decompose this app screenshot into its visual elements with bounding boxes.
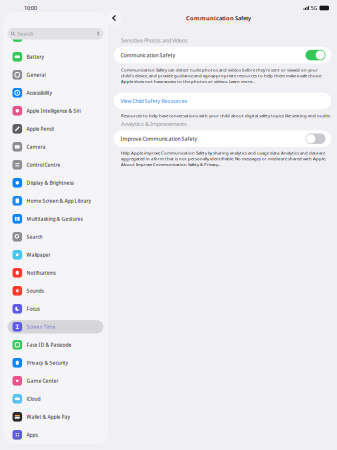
button[interactable]: Display & Brightness bbox=[7, 176, 103, 189]
button[interactable]: View Child Safety Resources bbox=[114, 93, 331, 109]
button[interactable]: Apple Intelligence & Siri bbox=[7, 104, 103, 117]
staticText: Notifications bbox=[27, 269, 56, 276]
staticText: Search bbox=[27, 233, 43, 240]
staticText: Communication Safety bbox=[120, 51, 175, 59]
button[interactable]: Privacy & Security bbox=[7, 356, 103, 369]
staticText: Face ID & Passcode bbox=[27, 341, 72, 348]
staticText: Apple Intelligence & Siri bbox=[27, 107, 81, 114]
button[interactable]: Battery bbox=[7, 50, 103, 63]
button[interactable]: Back bbox=[107, 11, 121, 25]
staticText: Improve Communication Safety bbox=[120, 135, 197, 142]
button[interactable]: Wallpaper bbox=[7, 248, 103, 261]
staticText: Game Center bbox=[27, 377, 59, 384]
button[interactable]: Apps bbox=[7, 428, 103, 441]
button[interactable]: Multitasking & Gestures bbox=[7, 212, 103, 225]
staticText: Sensitive Photos and Videos bbox=[121, 36, 188, 44]
button[interactable]: Home Screen & App Library bbox=[7, 194, 103, 207]
staticText: Screen Time bbox=[27, 323, 56, 330]
button[interactable]: Control Centre bbox=[7, 158, 103, 171]
staticText: View Child Safety Resources bbox=[120, 97, 187, 104]
staticText: General bbox=[27, 71, 46, 78]
staticText: Analytics & Improvements bbox=[121, 120, 187, 128]
staticText: Display & Brightness bbox=[27, 179, 74, 186]
button[interactable]: Game Center bbox=[7, 374, 103, 387]
staticText: Search bbox=[17, 30, 33, 37]
staticText: Camera bbox=[27, 143, 46, 150]
staticText: Communication Safety bbox=[186, 14, 251, 22]
button[interactable]: General bbox=[7, 68, 103, 81]
staticText: Apps bbox=[27, 431, 38, 438]
button[interactable]: Screen Time bbox=[7, 320, 103, 333]
button[interactable]: Face ID & Passcode bbox=[7, 338, 103, 351]
staticText: 10:00 bbox=[24, 4, 37, 12]
button[interactable]: Wallet & Apple Pay bbox=[7, 410, 103, 423]
button[interactable]: Notifications bbox=[7, 266, 103, 279]
button[interactable]: Apple Pencil bbox=[7, 122, 103, 135]
staticText: Resources to help have conversations wit… bbox=[121, 113, 331, 118]
staticText: iCloud bbox=[27, 395, 41, 402]
button[interactable]: Accessibility bbox=[7, 86, 103, 99]
button[interactable]: Focus bbox=[7, 302, 103, 315]
button[interactable]: Search bbox=[7, 230, 103, 243]
button[interactable]: iCloud bbox=[7, 392, 103, 405]
button[interactable]: Camera bbox=[7, 140, 103, 153]
staticText: Multitasking & Gestures bbox=[27, 215, 83, 222]
staticText: Privacy & Security bbox=[27, 359, 69, 366]
staticText: Accessibility bbox=[27, 89, 53, 96]
staticText: Battery bbox=[27, 53, 45, 60]
button[interactable]: Sounds bbox=[7, 284, 103, 297]
staticText: Sounds bbox=[27, 287, 44, 294]
staticText: Home Screen & App Library bbox=[27, 197, 92, 204]
staticText: Communication Safety can detect nude pho… bbox=[121, 67, 322, 84]
staticText: Help Apple improve Communication Safety … bbox=[121, 150, 326, 167]
staticText: 5G bbox=[310, 4, 317, 12]
staticText: Wallpaper bbox=[27, 251, 51, 258]
staticText: Apple Pencil bbox=[27, 125, 54, 132]
staticText: Focus bbox=[27, 305, 40, 312]
staticText: Control Centre bbox=[27, 161, 61, 168]
staticText: Wallet & Apple Pay bbox=[27, 413, 71, 420]
